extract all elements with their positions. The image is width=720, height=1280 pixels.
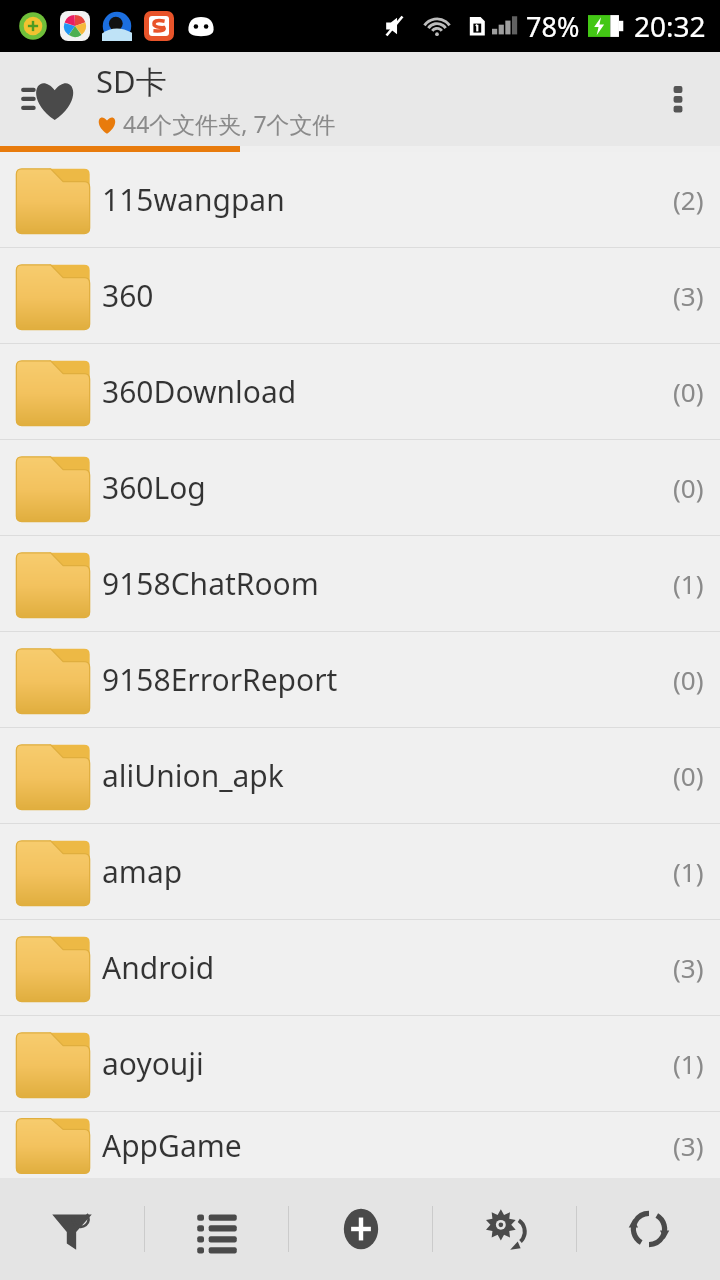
staticText: (1) bbox=[673, 854, 704, 889]
button[interactable]: 9158ChatRoom bbox=[0, 536, 720, 631]
staticText: aoyouji bbox=[102, 1043, 204, 1084]
button[interactable]: Filter bbox=[0, 1178, 144, 1280]
staticText: (1) bbox=[673, 1046, 704, 1081]
button[interactable]: List view bbox=[145, 1178, 288, 1280]
staticText: (0) bbox=[673, 470, 704, 505]
staticText: (3) bbox=[673, 1128, 704, 1163]
staticText: 78% bbox=[526, 8, 580, 45]
staticText: Android bbox=[102, 947, 215, 988]
staticText: 9158ChatRoom bbox=[102, 563, 319, 604]
staticText: AppGame bbox=[102, 1125, 242, 1166]
button[interactable]: 360 bbox=[0, 248, 720, 343]
button[interactable]: 115wangpan bbox=[0, 152, 720, 247]
staticText: 20:32 bbox=[634, 7, 706, 45]
staticText: 44个文件夹, 7个文件 bbox=[123, 108, 336, 139]
button[interactable]: More options bbox=[636, 52, 720, 146]
staticText: 360Log bbox=[102, 467, 206, 508]
button[interactable]: Refresh bbox=[577, 1178, 720, 1280]
button[interactable]: aoyouji bbox=[0, 1016, 720, 1111]
staticText: 115wangpan bbox=[102, 179, 285, 220]
staticText: (3) bbox=[673, 278, 704, 313]
button[interactable]: aliUnion_apk bbox=[0, 728, 720, 823]
staticText: amap bbox=[102, 851, 183, 892]
staticText: SD卡 bbox=[96, 60, 167, 102]
button[interactable]: 9158ErrorReport bbox=[0, 632, 720, 727]
button[interactable]: AppGame bbox=[0, 1112, 720, 1178]
button[interactable]: 360Log bbox=[0, 440, 720, 535]
button[interactable]: Settings bbox=[433, 1178, 576, 1280]
staticText: aliUnion_apk bbox=[102, 755, 284, 796]
staticText: (0) bbox=[673, 758, 704, 793]
button[interactable]: 360Download bbox=[0, 344, 720, 439]
staticText: 360 bbox=[102, 275, 154, 316]
staticText: (0) bbox=[673, 662, 704, 697]
staticText: 360Download bbox=[102, 371, 297, 412]
staticText: (3) bbox=[673, 950, 704, 985]
button[interactable]: Add bbox=[289, 1178, 432, 1280]
button[interactable]: amap bbox=[0, 824, 720, 919]
staticText: (2) bbox=[673, 182, 704, 217]
staticText: (1) bbox=[673, 566, 704, 601]
button[interactable]: Android bbox=[0, 920, 720, 1015]
staticText: 9158ErrorReport bbox=[102, 659, 338, 700]
button[interactable]: Favorites menu bbox=[0, 52, 96, 146]
staticText: (0) bbox=[673, 374, 704, 409]
